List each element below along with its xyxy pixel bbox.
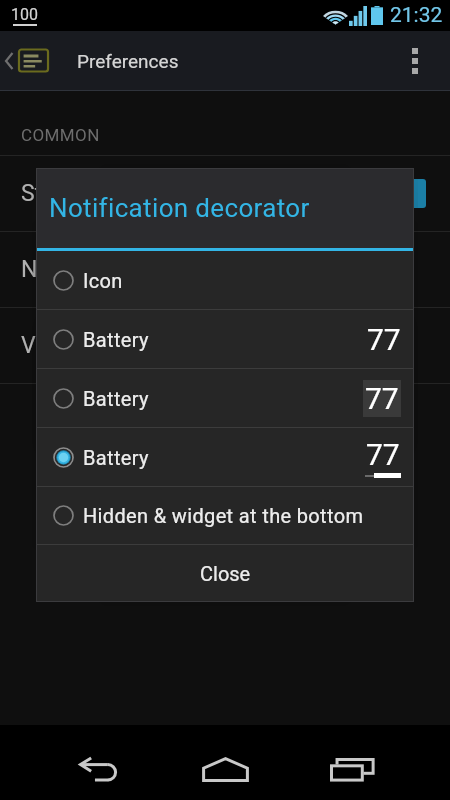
button[interactable]: Battery: [36, 369, 414, 427]
staticText: 100: [11, 5, 38, 24]
button[interactable]: Battery: [36, 310, 414, 368]
staticText: 77: [365, 381, 399, 416]
button[interactable]: More options: [390, 31, 440, 90]
staticText: Preferences: [77, 50, 179, 72]
staticText: Icon: [83, 269, 123, 292]
button[interactable]: Hidden & widget at the bottom: [36, 487, 414, 544]
staticText: 77: [367, 322, 401, 357]
staticText: Battery: [83, 387, 149, 410]
staticText: COMMON: [21, 125, 100, 145]
button[interactable]: Battery: [36, 428, 414, 486]
button[interactable]: Home: [195, 751, 255, 787]
button[interactable]: Notification decorator: [0, 232, 450, 307]
button[interactable]: Recent apps: [322, 751, 382, 787]
staticText: 77: [366, 437, 400, 472]
button[interactable]: Close: [36, 545, 414, 602]
staticText: Notification decorator: [21, 256, 244, 283]
staticText: Battery: [83, 328, 149, 351]
staticText: Start on boot: [21, 180, 155, 207]
staticText: Hidden & widget at the bottom: [83, 504, 364, 527]
button[interactable]: Navigate up: [0, 31, 77, 90]
button[interactable]: Start on boot: [0, 156, 450, 231]
staticText: Notification decorator: [49, 193, 310, 223]
button[interactable]: Back: [68, 751, 128, 787]
button[interactable]: Vibrate: [0, 308, 450, 383]
staticText: Vibrate: [21, 332, 94, 359]
button[interactable]: Icon: [36, 251, 414, 309]
staticText: Battery: [83, 446, 149, 469]
staticText: Close: [200, 562, 251, 585]
staticText: 21:32: [390, 3, 443, 28]
